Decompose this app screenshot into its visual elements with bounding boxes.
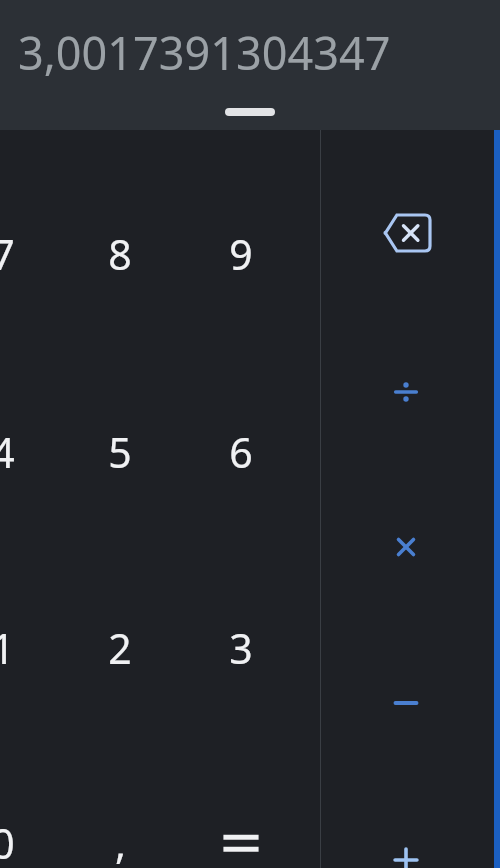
button[interactable]: 6 (182, 377, 300, 527)
staticText: 2 (108, 620, 132, 676)
button[interactable]: Divide (346, 317, 466, 467)
button[interactable]: Expand calculation history (225, 108, 275, 116)
button[interactable]: 2 (61, 573, 179, 723)
button[interactable]: Equals (182, 768, 300, 868)
staticText: 7 (0, 226, 15, 282)
button[interactable]: 5 (61, 377, 179, 527)
button[interactable]: 7 (0, 179, 62, 329)
button[interactable]: 0 (0, 768, 62, 868)
staticText: 8 (108, 226, 132, 282)
button[interactable]: 4 (0, 377, 62, 527)
button[interactable]: , (61, 768, 179, 868)
staticText: 4 (0, 424, 15, 480)
staticText: 3 (229, 620, 253, 676)
other: Equals (219, 830, 263, 856)
button[interactable]: 1 (0, 573, 62, 723)
button[interactable]: 8 (61, 179, 179, 329)
staticText: 1 (0, 620, 15, 676)
button[interactable]: Multiply (346, 472, 466, 622)
staticText: 6 (229, 424, 253, 480)
staticText: , (115, 815, 126, 868)
staticText: 3,0017391304347 (18, 22, 391, 83)
staticText: 5 (108, 424, 132, 480)
button[interactable]: Backspace (347, 158, 467, 308)
staticText: 9 (229, 226, 253, 282)
button[interactable]: 9 (182, 179, 300, 329)
staticText: 0 (0, 815, 15, 868)
button[interactable]: 3 (182, 573, 300, 723)
button[interactable]: Plus (346, 785, 466, 868)
button[interactable]: Minus (346, 628, 466, 778)
